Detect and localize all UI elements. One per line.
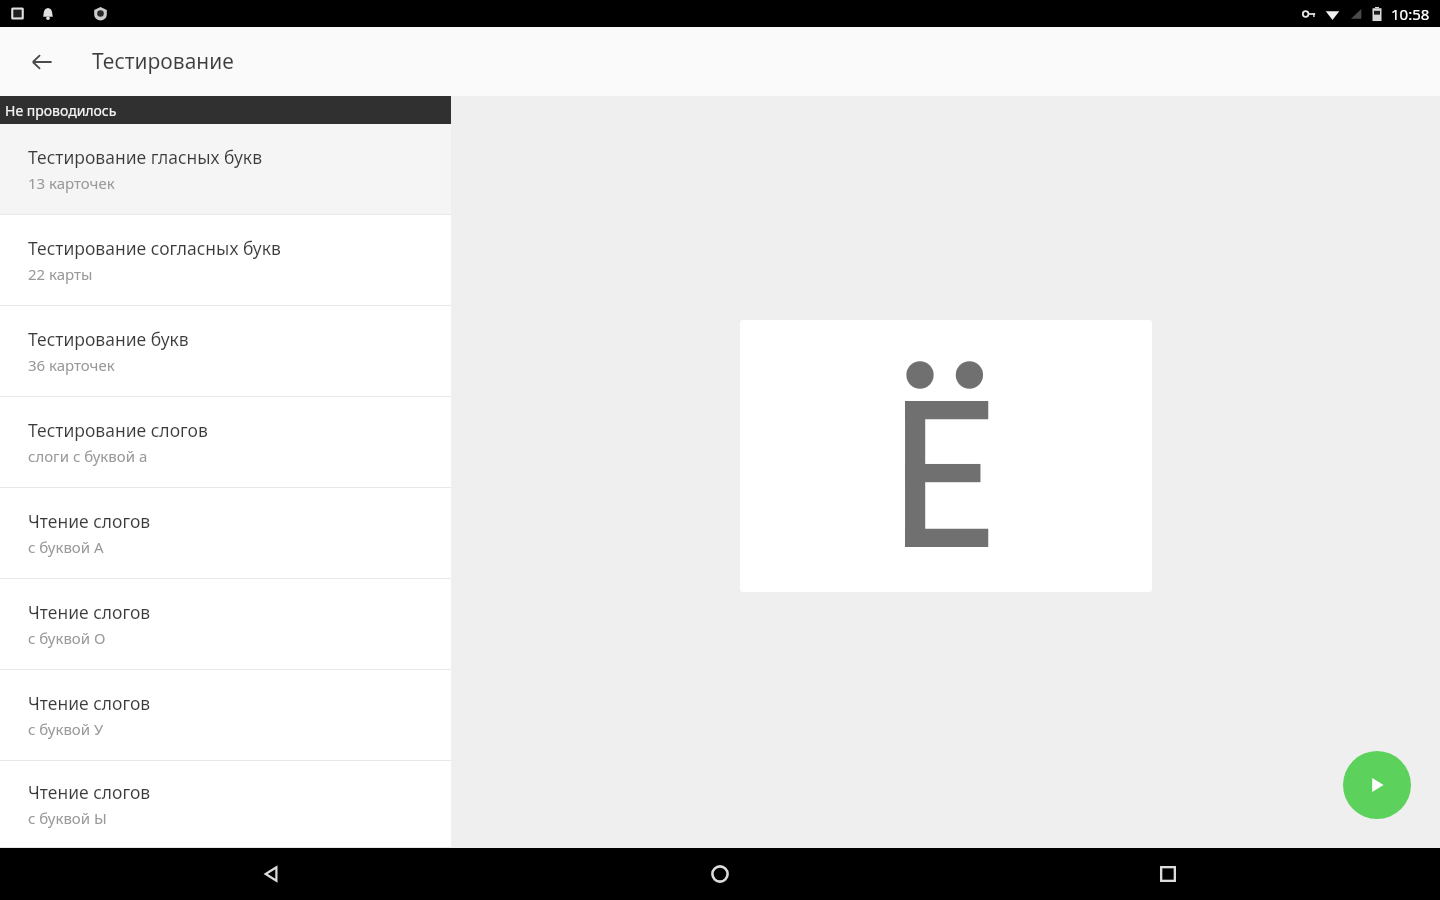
staticText: Тестирование [92,47,234,76]
staticText: Тестирование согласных букв [28,236,281,260]
button[interactable]: Тестирование букв [0,306,451,397]
staticText: с буквой У [28,719,104,739]
button[interactable]: Чтение слогов [0,761,451,848]
button[interactable]: Back [18,38,66,86]
button[interactable] [740,320,1152,592]
staticText: Чтение слогов [28,780,151,804]
staticText: 10:58 [1391,4,1430,24]
button[interactable]: Home [688,848,752,900]
staticText: 13 карточек [28,173,115,193]
staticText: 36 карточек [28,355,115,375]
button[interactable]: Тестирование слогов [0,397,451,488]
staticText: Тестирование гласных букв [28,145,263,169]
staticText: с буквой Ы [28,808,107,828]
button[interactable]: Тестирование согласных букв [0,215,451,306]
staticText: Чтение слогов [28,691,151,715]
staticText: с буквой А [28,537,104,557]
button[interactable]: Play [1343,751,1411,819]
staticText: с буквой О [28,628,106,648]
staticText: Чтение слогов [28,600,151,624]
button[interactable]: Чтение слогов [0,579,451,670]
button[interactable]: Back [240,848,304,900]
button[interactable]: Тестирование гласных букв [0,124,451,215]
button[interactable]: Recent apps [1136,848,1200,900]
staticText: Не проводилось [5,101,117,120]
button[interactable]: Чтение слогов [0,670,451,761]
button[interactable]: Чтение слогов [0,488,451,579]
staticText: Тестирование слогов [28,418,208,442]
staticText: Тестирование букв [28,327,189,351]
staticText: слоги с буквой а [28,446,148,466]
staticText: 22 карты [28,264,93,284]
staticText: Чтение слогов [28,509,151,533]
